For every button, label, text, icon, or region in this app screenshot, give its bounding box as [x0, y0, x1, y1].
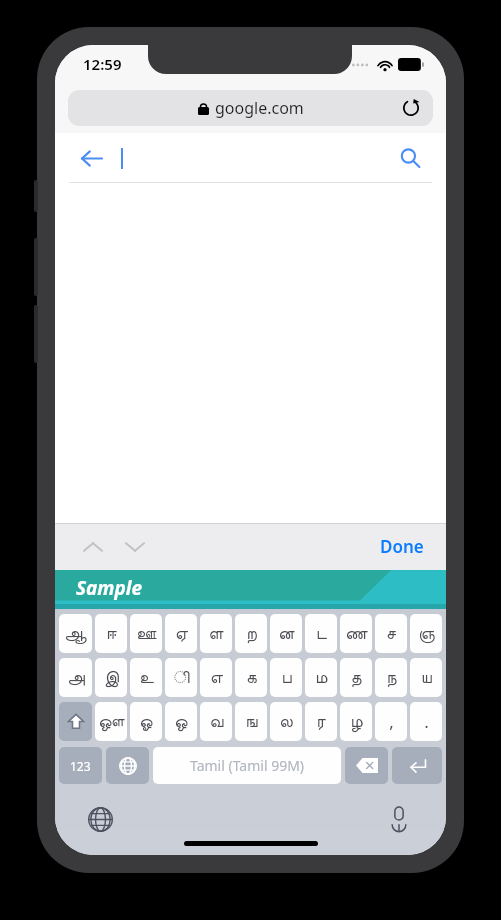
button[interactable]: த [340, 658, 372, 697]
button[interactable]: ஔ [95, 702, 127, 741]
staticText: 12:59 [83, 54, 122, 74]
staticText: க [246, 669, 257, 686]
button[interactable]: Next field [119, 531, 151, 563]
button[interactable]: Tamil (Tamil 99M) [153, 747, 341, 784]
button[interactable]: Search [394, 142, 426, 174]
staticText: இ [104, 669, 119, 686]
button[interactable]: ஓ [130, 702, 162, 741]
staticText: ள [208, 625, 224, 642]
button[interactable]: ஞ [410, 614, 442, 653]
button[interactable]: ஆ [59, 614, 92, 653]
staticText: Sample [76, 575, 143, 601]
button[interactable]: அ [59, 658, 92, 697]
staticText: 123 [70, 758, 91, 774]
staticText: ஏ [175, 625, 188, 642]
staticText: ல [279, 713, 293, 730]
button[interactable]: உ [130, 658, 162, 697]
staticText: Done [380, 535, 424, 558]
button[interactable]: , [375, 702, 407, 741]
button[interactable]: ய [410, 658, 442, 697]
staticText: அ [67, 669, 85, 686]
staticText: ஞ [418, 625, 435, 642]
button[interactable]: Back [75, 142, 107, 174]
staticText: வ [209, 713, 224, 730]
button[interactable]: ந [375, 658, 407, 697]
staticText: ஈ [106, 625, 117, 642]
button[interactable]: 123 [59, 747, 102, 784]
button[interactable]: ற [235, 614, 267, 653]
button[interactable]: ங [235, 702, 267, 741]
button[interactable]: . [410, 702, 442, 741]
button[interactable]: இ [95, 658, 127, 697]
staticText: எ [210, 669, 223, 686]
button[interactable]: ப [270, 658, 302, 697]
staticText: ப [281, 669, 292, 686]
staticText: ஆ [64, 625, 87, 642]
staticText: ச [386, 625, 396, 642]
staticText: , [389, 710, 394, 733]
button[interactable]: ம [305, 658, 337, 697]
button[interactable]: Done [374, 531, 430, 562]
button[interactable]: ஈ [95, 614, 127, 653]
staticText: ழ [350, 713, 363, 730]
button[interactable]: ல [270, 702, 302, 741]
staticText: ந [386, 669, 397, 686]
button[interactable]: ட [305, 614, 337, 653]
staticText: ஔ [98, 713, 125, 730]
button[interactable]: Previous field [77, 531, 109, 563]
button[interactable]: ஒ [165, 702, 197, 741]
staticText: ங [245, 713, 258, 730]
staticText: ன [278, 625, 295, 642]
button[interactable]: Change keyboard [106, 747, 149, 784]
button[interactable]: ழ [340, 702, 372, 741]
staticText: ம [315, 669, 328, 686]
staticText: ி [173, 669, 190, 686]
button[interactable]: ி [165, 658, 197, 697]
staticText: ட [316, 625, 327, 642]
button[interactable]: Reload [400, 97, 422, 119]
staticText: ஓ [139, 713, 153, 730]
button[interactable]: google.com [68, 90, 433, 126]
staticText: ஒ [174, 713, 188, 730]
button[interactable]: ன [270, 614, 302, 653]
staticText: . [424, 710, 429, 733]
staticText: google.com [215, 97, 304, 119]
staticText: ர [316, 713, 326, 730]
button[interactable]: ண [340, 614, 372, 653]
button[interactable]: Return [392, 747, 442, 784]
button[interactable]: வ [200, 702, 232, 741]
button[interactable]: ஊ [130, 614, 162, 653]
staticText: ற [246, 625, 257, 642]
button[interactable]: ஏ [165, 614, 197, 653]
staticText: ண [345, 625, 368, 642]
staticText: உ [139, 669, 154, 686]
button[interactable]: எ [200, 658, 232, 697]
staticText: த [350, 669, 362, 686]
button[interactable]: ச [375, 614, 407, 653]
button[interactable]: Change keyboard [83, 802, 117, 836]
button[interactable]: Delete [345, 747, 388, 784]
button[interactable]: ர [305, 702, 337, 741]
button[interactable]: க [235, 658, 267, 697]
staticText: ய [421, 669, 432, 686]
button[interactable]: Shift [59, 702, 92, 741]
staticText: Tamil (Tamil 99M) [190, 756, 305, 775]
button[interactable]: ள [200, 614, 232, 653]
button[interactable]: Dictation [382, 802, 416, 836]
staticText: ஊ [136, 625, 157, 642]
